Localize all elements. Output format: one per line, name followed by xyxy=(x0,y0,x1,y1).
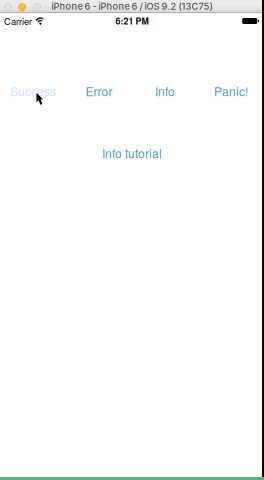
staticText: 6:21 PM xyxy=(115,15,148,27)
staticText: Error xyxy=(85,82,112,100)
staticText: Panic! xyxy=(214,82,248,100)
button[interactable]: Panic! xyxy=(198,82,264,100)
staticText: Info tutorial xyxy=(102,144,162,162)
staticText: Success xyxy=(10,82,56,100)
button[interactable]: Error xyxy=(66,82,132,100)
button[interactable]: Info xyxy=(132,82,198,100)
button[interactable]: Success xyxy=(0,82,66,100)
button[interactable]: Info tutorial xyxy=(0,144,264,162)
staticText: iPhone 6 - iPhone 6 / iOS 9.2 (13C75) xyxy=(51,1,212,12)
staticText: Carrier xyxy=(4,14,32,28)
staticText: Info xyxy=(155,82,175,100)
